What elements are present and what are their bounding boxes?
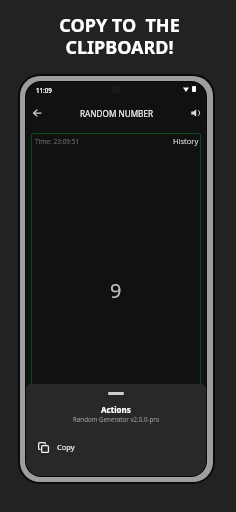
staticText: 11:09 [36, 86, 52, 94]
staticText: History [173, 136, 199, 146]
staticText: Copy [57, 442, 75, 452]
button[interactable]: Sound [187, 104, 205, 122]
staticText: 9 [110, 277, 122, 304]
staticText: Time: 23:09:51 [35, 137, 80, 146]
staticText: RANDOM NUMBER [80, 108, 154, 119]
staticText: COPY TO THE [59, 13, 180, 38]
button[interactable]: Back [28, 104, 46, 122]
staticText: CLIPBOARD! [65, 35, 174, 60]
staticText: Random Generator v2.0.0-pro [73, 415, 160, 423]
staticText: Actions [101, 404, 131, 415]
button[interactable]: Copy [26, 436, 206, 458]
